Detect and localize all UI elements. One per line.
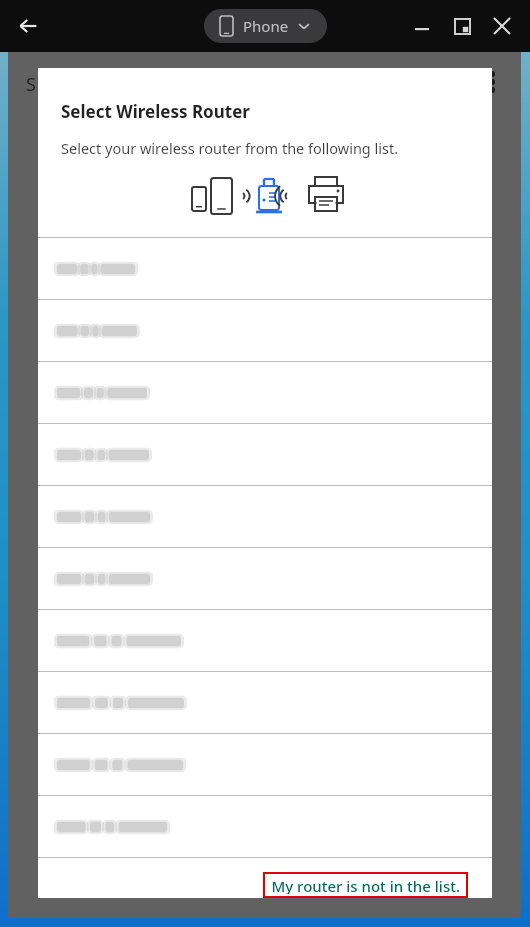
staticText: Select Wireless Router — [61, 100, 250, 123]
button[interactable] — [38, 362, 492, 423]
staticText: S — [26, 72, 36, 97]
button[interactable] — [38, 734, 492, 795]
button[interactable] — [38, 610, 492, 671]
button[interactable] — [38, 238, 492, 299]
button[interactable] — [38, 486, 492, 547]
staticText: Phone — [243, 16, 289, 36]
staticText: My router is not in the list. — [271, 876, 460, 894]
button[interactable]: Close — [482, 6, 522, 46]
button[interactable]: Restore — [442, 6, 482, 46]
button[interactable]: Back — [10, 8, 46, 44]
button[interactable]: More options — [474, 64, 510, 100]
button[interactable]: Minimize — [402, 6, 442, 46]
button[interactable] — [38, 424, 492, 485]
button[interactable]: Phone — [204, 9, 327, 43]
button[interactable] — [38, 548, 492, 609]
button[interactable] — [38, 672, 492, 733]
button[interactable]: My router is not in the list. — [263, 872, 468, 898]
staticText: Select your wireless router from the fol… — [61, 138, 399, 158]
button[interactable] — [38, 796, 492, 857]
button[interactable] — [38, 300, 492, 361]
